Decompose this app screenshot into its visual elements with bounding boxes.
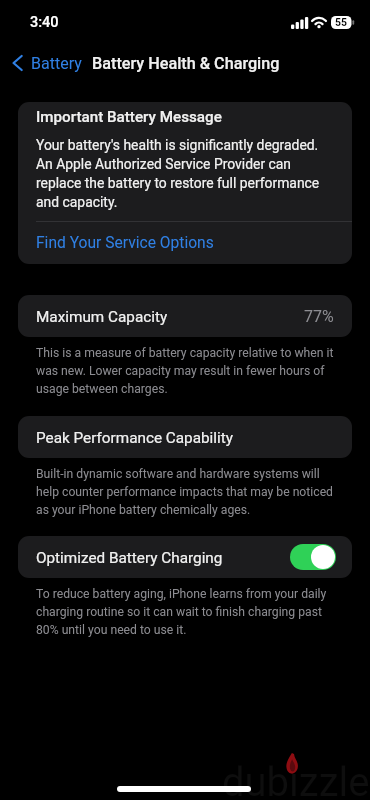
staticText: Peak Performance Capability [36, 428, 233, 447]
staticText: Your battery's health is significantly d… [36, 135, 320, 211]
staticText: Battery Health & Charging [92, 53, 280, 73]
staticText: Important Battery Message [36, 107, 222, 126]
button[interactable]: Find Your Service Options [18, 222, 352, 263]
button[interactable]: Peak Performance Capability [18, 416, 352, 458]
button[interactable]: Optimized Battery Charging toggle [290, 544, 336, 570]
staticText: dubizzle [222, 761, 370, 800]
staticText: Battery [31, 53, 82, 73]
staticText: 55 [335, 17, 348, 28]
button[interactable]: Battery [0, 50, 90, 76]
staticText: Find Your Service Options [36, 233, 214, 252]
staticText: Built-in dynamic software and hardware s… [36, 464, 333, 518]
button[interactable]: Maximum Capacity [18, 295, 352, 337]
staticText: To reduce battery aging, iPhone learns f… [36, 584, 327, 638]
staticText: Optimized Battery Charging [36, 548, 223, 567]
staticText: 3:40 [30, 13, 59, 31]
staticText: This is a measure of battery capacity re… [36, 343, 334, 397]
staticText: 77% [304, 307, 334, 326]
staticText: Maximum Capacity [36, 307, 168, 326]
